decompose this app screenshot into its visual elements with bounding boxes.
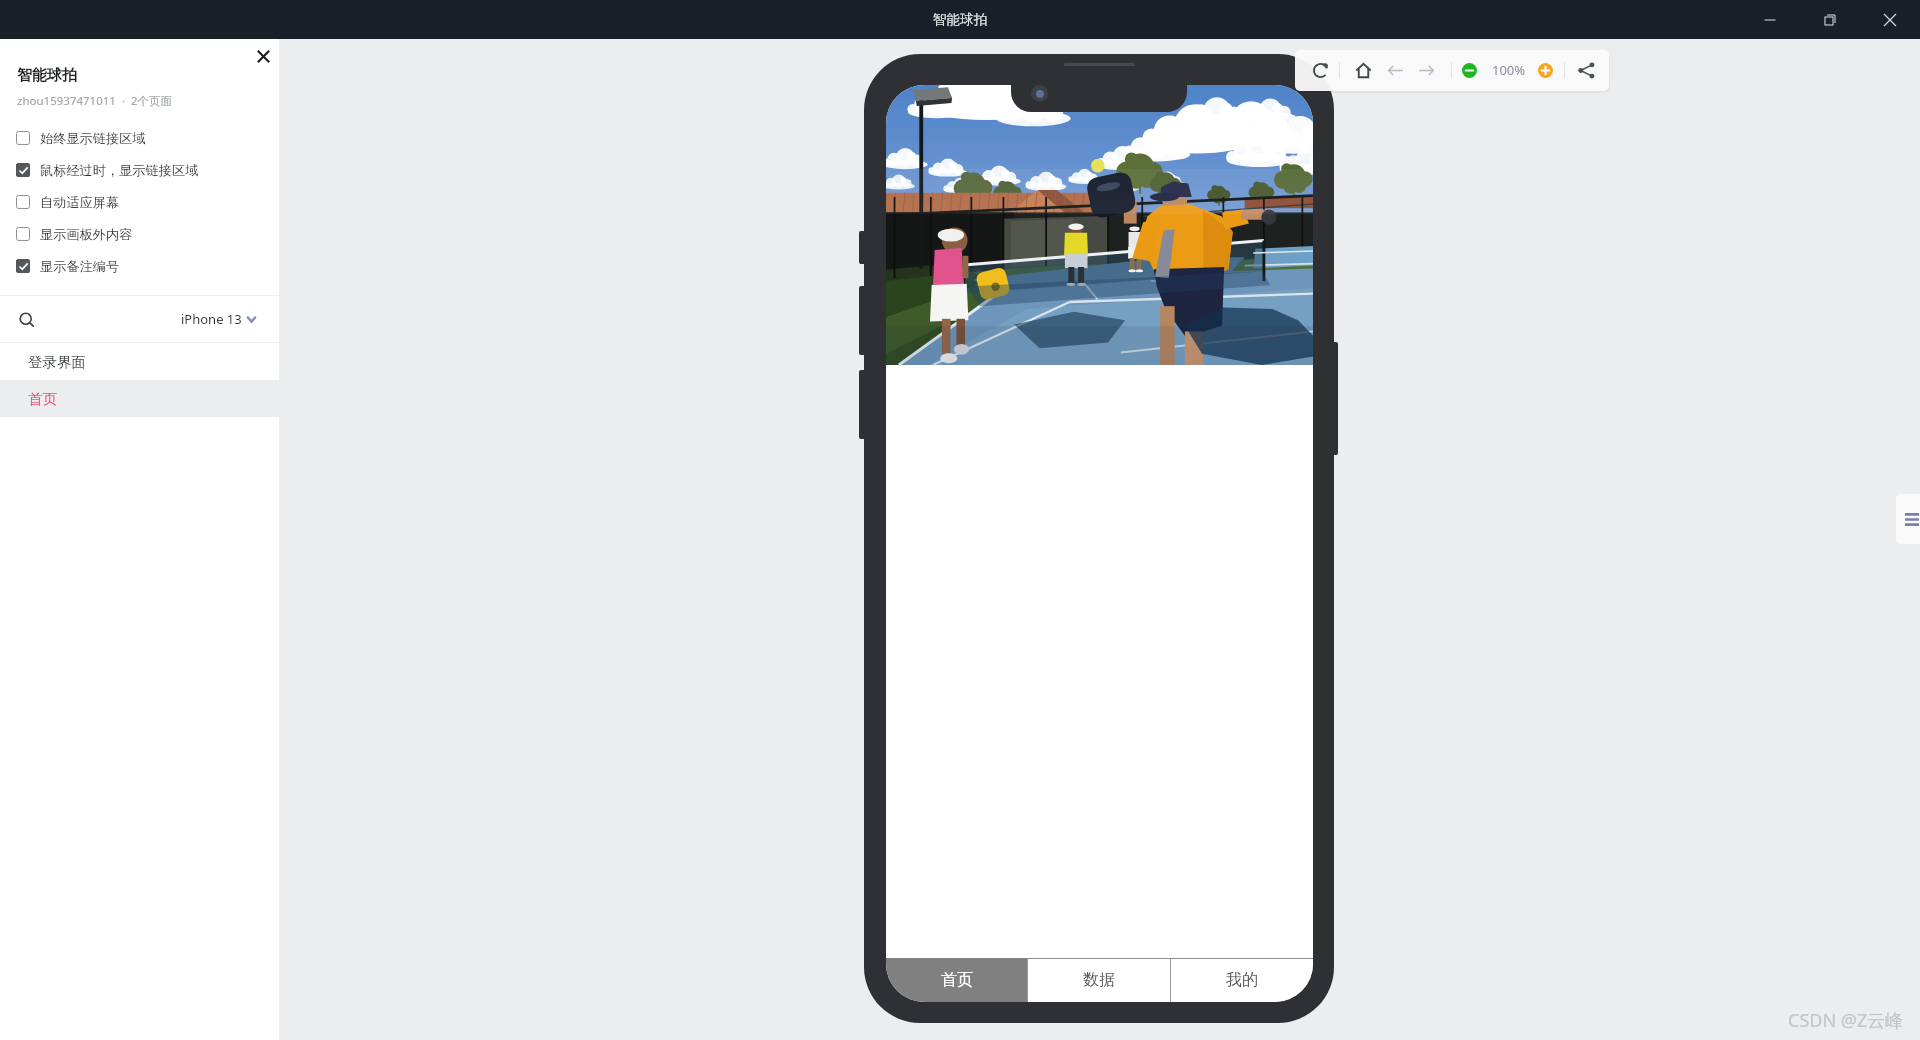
staticText: 始终显示链接区域 — [40, 130, 146, 147]
staticText: 首页 — [28, 390, 57, 408]
staticText: 首页 — [941, 970, 973, 990]
staticText: 显示画板外内容 — [40, 226, 133, 243]
staticText: 自动适应屏幕 — [40, 194, 120, 211]
button[interactable]: 显示画板外内容 — [0, 218, 279, 250]
button[interactable]: Home — [1349, 56, 1377, 84]
staticText: 智能球拍 — [933, 11, 987, 28]
button[interactable]: 始终显示链接区域 — [0, 122, 279, 154]
button[interactable]: Search — [14, 307, 38, 331]
button[interactable]: Reload — [1306, 56, 1334, 84]
staticText: 100% — [1492, 61, 1526, 79]
button[interactable]: Zoom in — [1531, 56, 1559, 84]
button[interactable]: 首页 — [886, 958, 1027, 1002]
button[interactable]: 首页 — [0, 380, 279, 417]
button[interactable]: 登录界面 — [0, 343, 279, 380]
button[interactable]: Share — [1572, 56, 1600, 84]
button[interactable]: Minimize — [1740, 0, 1800, 39]
button[interactable]: 鼠标经过时，显示链接区域 — [0, 154, 279, 186]
button[interactable]: Open panel — [1896, 494, 1920, 544]
button[interactable]: 自动适应屏幕 — [0, 186, 279, 218]
button[interactable]: Zoom out — [1455, 56, 1483, 84]
button[interactable]: Forward — [1412, 56, 1440, 84]
button[interactable]: Close — [1860, 0, 1920, 39]
staticText: 智能球拍 — [17, 66, 77, 85]
staticText: zhou15937471011 · 2个页面 — [17, 93, 173, 109]
button[interactable]: 我的 — [1171, 958, 1313, 1002]
staticText: 登录界面 — [28, 353, 86, 371]
staticText: 鼠标经过时，显示链接区域 — [40, 162, 199, 179]
button[interactable]: Maximize — [1800, 0, 1860, 39]
staticText: 数据 — [1083, 970, 1115, 990]
staticText: 我的 — [1226, 970, 1258, 990]
staticText: CSDN @Z云峰 — [1788, 1008, 1904, 1033]
button[interactable]: Back — [1381, 56, 1409, 84]
button[interactable]: 数据 — [1028, 958, 1170, 1002]
staticText: 显示备注编号 — [40, 258, 120, 275]
button[interactable]: 显示备注编号 — [0, 250, 279, 282]
button[interactable]: iPhone 13 — [181, 304, 256, 334]
staticText: iPhone 13 — [181, 310, 242, 328]
button[interactable]: Close panel — [248, 44, 278, 69]
